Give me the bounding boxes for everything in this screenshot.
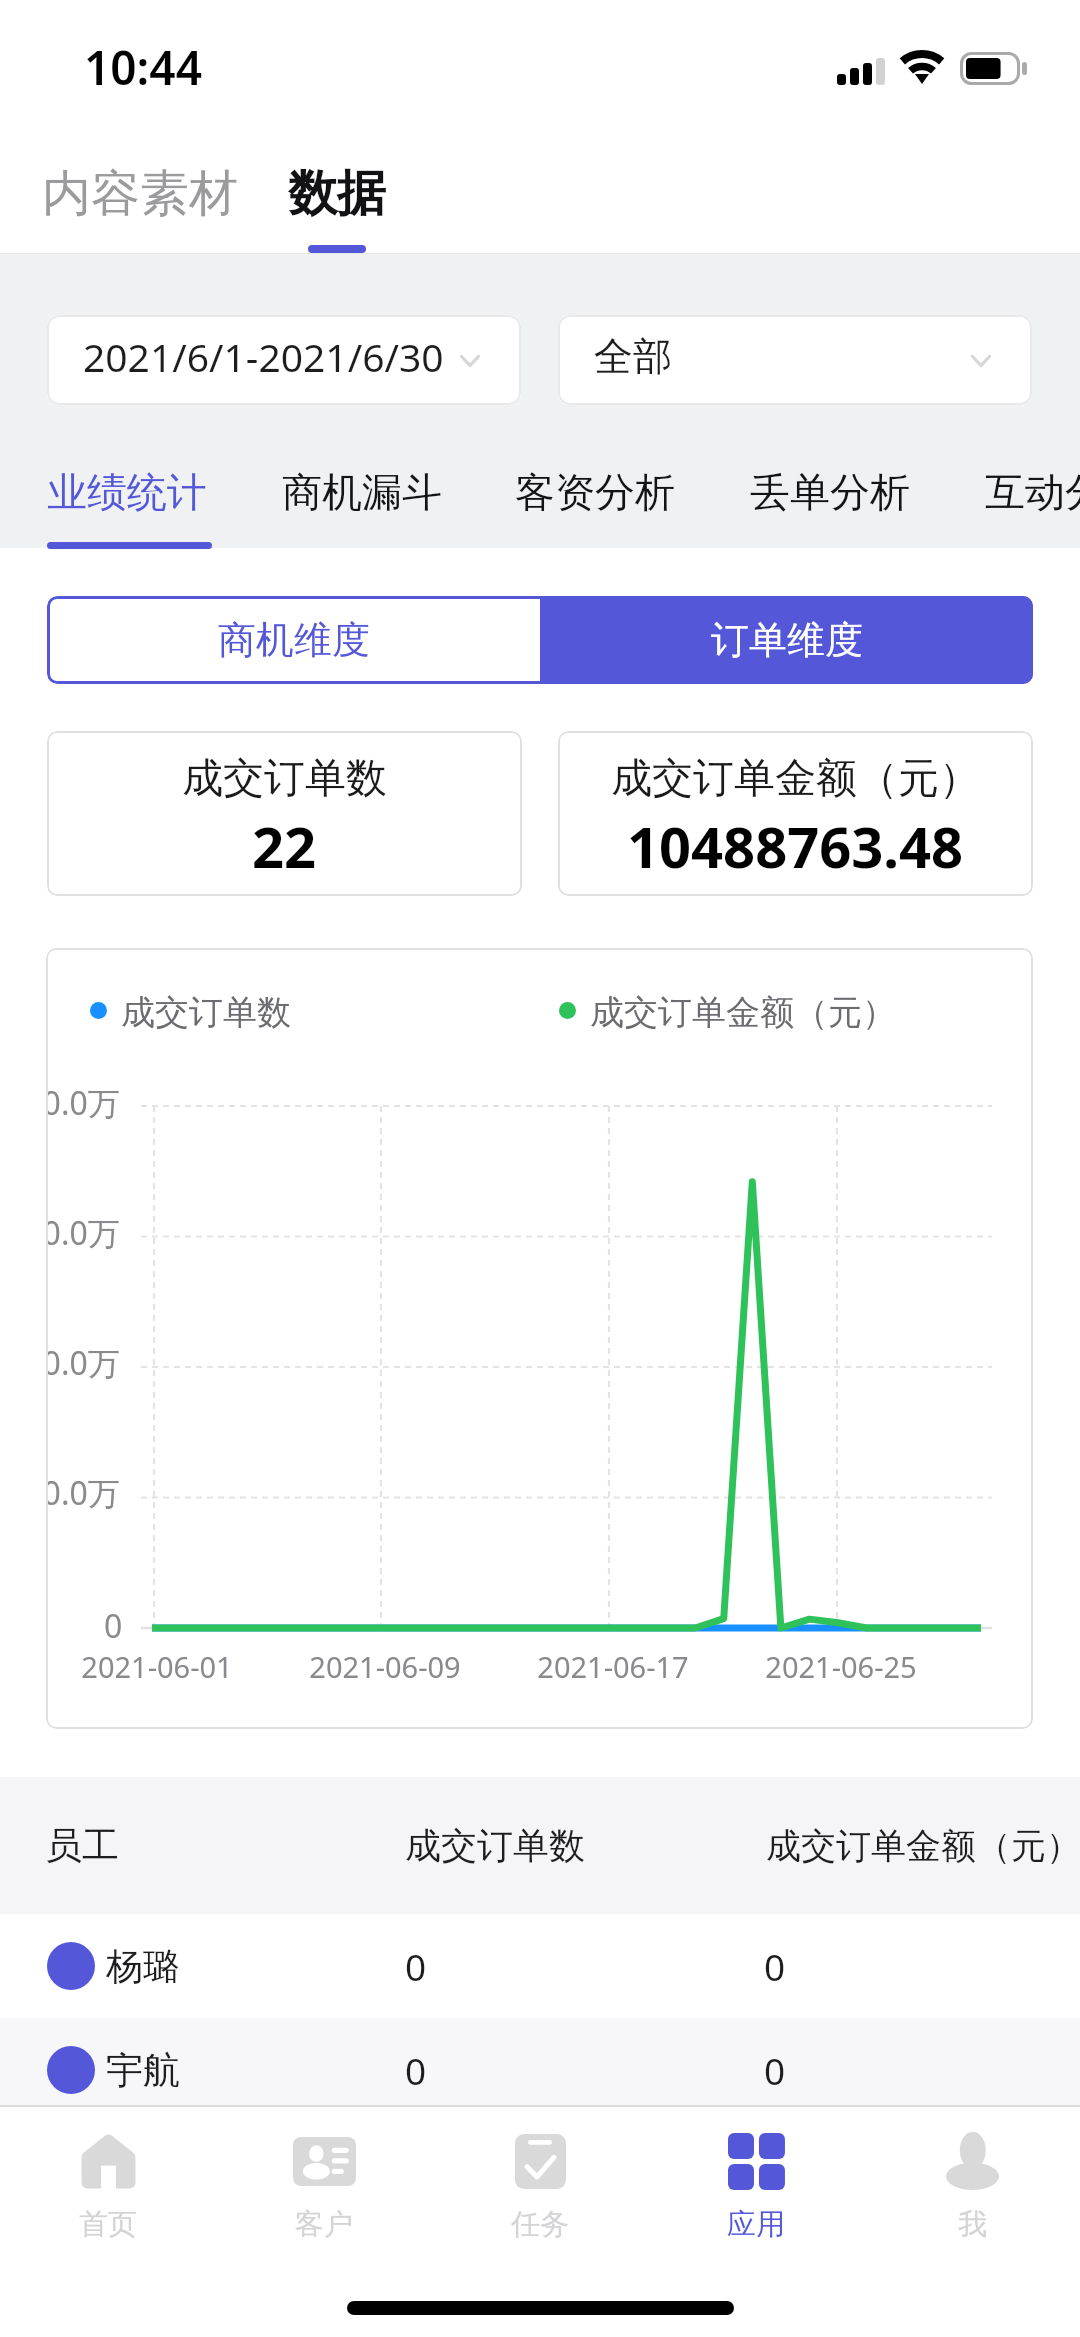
button[interactable]: 商机维度	[47, 596, 540, 684]
staticText: 0	[104, 1604, 123, 1648]
staticText: 000.0万	[46, 1471, 120, 1515]
button[interactable]: Apps	[648, 2107, 864, 2239]
staticText: 应用	[727, 2206, 785, 2243]
staticText: 0	[764, 1941, 786, 1991]
button[interactable]: Me	[864, 2107, 1080, 2239]
staticText: 全部	[594, 332, 672, 381]
button[interactable]: 商机漏斗	[282, 456, 447, 548]
staticText: 10:44	[84, 36, 202, 99]
staticText: 成交订单数	[405, 1823, 585, 1868]
staticText: 0	[764, 2045, 786, 2095]
staticText: 杨璐	[106, 1943, 180, 1990]
staticText: 成交订单金额（元）	[590, 991, 896, 1034]
button[interactable]: 业绩统计	[47, 456, 212, 548]
staticText: 2021-06-09	[309, 1647, 461, 1686]
staticText: 成交订单数	[182, 753, 387, 805]
button[interactable]: Tasks	[432, 2107, 648, 2239]
staticText: 成交订单金额（元）	[766, 1824, 1080, 1868]
button[interactable]: 订单维度	[540, 596, 1033, 684]
staticText: 首页	[79, 2206, 137, 2243]
button[interactable]: 成交订单数	[47, 731, 522, 896]
staticText: 互动分析	[985, 467, 1080, 517]
staticText: 客资分析	[515, 467, 675, 517]
staticText: 客户	[295, 2206, 353, 2243]
staticText: 000.0万	[46, 1211, 120, 1255]
staticText: 2021/6/1-2021/6/30	[83, 330, 444, 383]
staticText: 0	[405, 1941, 427, 1991]
staticText: 员工	[45, 1822, 119, 1869]
staticText: 商机维度	[218, 616, 370, 664]
button[interactable]: 2021/6/1-2021/6/30	[47, 315, 521, 405]
button[interactable]: 宇航	[0, 2018, 1080, 2122]
staticText: 成交订单数	[121, 991, 291, 1034]
button[interactable]: 互动分析	[985, 456, 1080, 548]
staticText: 任务	[511, 2206, 569, 2243]
staticText: 2021-06-25	[765, 1647, 917, 1686]
button[interactable]: Home	[0, 2107, 216, 2239]
staticText: 000.0万	[46, 1341, 120, 1385]
staticText: 数据	[288, 163, 386, 225]
staticText: 0	[405, 2045, 427, 2095]
button[interactable]: 全部	[558, 315, 1032, 405]
staticText: 订单维度	[711, 616, 863, 664]
staticText: 我	[958, 2206, 987, 2243]
staticText: 22	[252, 808, 317, 884]
staticText: 内容素材	[42, 163, 238, 225]
staticText: 2021-06-01	[81, 1647, 233, 1686]
button[interactable]: 内容素材	[32, 155, 248, 233]
button[interactable]: 杨璐	[0, 1914, 1080, 2018]
staticText: 2021-06-17	[537, 1647, 689, 1686]
staticText: 宇航	[106, 2047, 180, 2094]
staticText: 丢单分析	[750, 467, 910, 517]
button[interactable]: 丢单分析	[750, 456, 915, 548]
button[interactable]: 数据	[278, 155, 396, 233]
button[interactable]: Customers	[216, 2107, 432, 2239]
staticText: 成交订单金额（元）	[611, 753, 980, 805]
button[interactable]: 客资分析	[515, 456, 680, 548]
staticText: 商机漏斗	[282, 467, 442, 517]
button[interactable]: 成交订单金额（元）	[558, 731, 1033, 896]
staticText: 业绩统计	[47, 467, 207, 517]
staticText: 000.0万	[46, 1081, 120, 1125]
staticText: 10488763.48	[627, 808, 964, 884]
